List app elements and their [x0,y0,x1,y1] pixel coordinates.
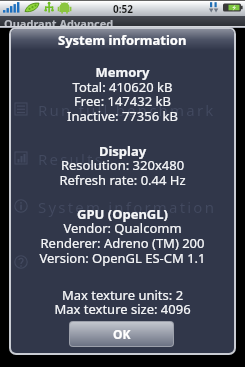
staticText: System information [58,31,187,49]
button[interactable]: OK [70,322,173,346]
staticText: Max texture size: 4096 [11,300,234,318]
staticText: System information [38,197,217,217]
staticText: Run full benchmark [38,100,216,120]
staticText: Quadrant Advanced [4,16,114,27]
staticText: Inactive: 77356 kB [11,107,234,125]
staticText: Version: OpenGL ES-CM 1.1 [11,249,234,267]
staticText: Run full benchmark [0,50,245,68]
staticText: Refresh rate: 0.44 Hz [11,171,234,189]
staticText: 0:52 [113,2,133,16]
staticText: Vendor: Qualcomm [11,219,234,237]
staticText: Resolution: 320x480 [11,156,234,174]
staticText: Renderer: Adreno (TM) 200 [11,234,234,252]
staticText: GPU (OpenGL) [11,205,234,223]
staticText: Max texture units: 2 [11,286,234,304]
staticText: Total: 410620 kB [11,78,234,96]
staticText: Results [38,149,105,169]
staticText: Display [11,142,234,160]
staticText: Memory [11,63,234,81]
staticText: OK [113,326,131,342]
staticText: Free: 147432 kB [11,92,234,110]
